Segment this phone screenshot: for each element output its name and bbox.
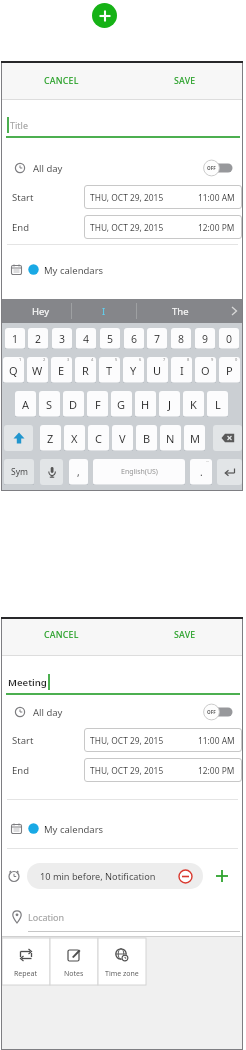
button[interactable]: Sym xyxy=(4,459,34,485)
staticText: 2 xyxy=(43,357,46,362)
staticText: D xyxy=(69,397,78,412)
staticText: English(US) xyxy=(121,467,158,477)
button[interactable]: 7 xyxy=(147,328,167,349)
staticText: I xyxy=(102,305,106,318)
button[interactable]: B xyxy=(136,425,157,451)
button[interactable]: I xyxy=(171,357,192,383)
button[interactable]: F xyxy=(87,391,108,417)
staticText: 11:00 AM xyxy=(198,735,235,746)
button[interactable]: S xyxy=(39,391,60,417)
button[interactable]: C xyxy=(88,425,109,451)
button[interactable]: H xyxy=(135,391,156,417)
button[interactable] xyxy=(50,938,98,985)
staticText: E xyxy=(58,363,65,378)
staticText: 3 xyxy=(67,357,70,362)
button[interactable]: 2 xyxy=(28,328,48,349)
button[interactable]: English(US) xyxy=(93,459,185,485)
button[interactable]: 0 xyxy=(219,328,239,349)
button[interactable] xyxy=(215,869,229,883)
staticText: SAVE xyxy=(174,75,196,87)
button[interactable]: . xyxy=(190,459,212,485)
button[interactable]: O xyxy=(195,357,216,383)
button[interactable]: 6 xyxy=(124,328,144,349)
button[interactable]: 4 xyxy=(76,328,96,349)
staticText: 6 xyxy=(131,332,138,346)
staticText: R xyxy=(82,363,89,378)
button[interactable] xyxy=(2,938,50,985)
button[interactable]: 8 xyxy=(171,328,191,349)
staticText: End xyxy=(12,764,29,777)
staticText: ··· xyxy=(206,459,210,464)
button[interactable]: T xyxy=(99,357,120,383)
button[interactable]: G xyxy=(111,391,132,417)
button[interactable]: CANCEL xyxy=(28,71,94,91)
button[interactable]: Z xyxy=(40,425,61,451)
staticText: 9 xyxy=(211,357,214,362)
staticText: 0 xyxy=(235,357,238,362)
staticText: 6 xyxy=(139,357,142,362)
button[interactable]: 3 xyxy=(52,328,72,349)
staticText: The xyxy=(172,305,189,318)
button[interactable]: V xyxy=(112,425,133,451)
staticText: Hey xyxy=(32,305,50,318)
button[interactable]: THU, OCT 29, 2015 xyxy=(84,215,242,239)
button[interactable]: SAVE xyxy=(157,625,213,645)
staticText: S xyxy=(46,397,53,412)
button[interactable]: A xyxy=(15,391,36,417)
button[interactable]: THU, OCT 29, 2015 xyxy=(84,185,242,209)
staticText: 1 xyxy=(19,357,22,362)
button[interactable]: E xyxy=(51,357,72,383)
staticText: I xyxy=(180,363,184,378)
button[interactable]: CANCEL xyxy=(28,625,94,645)
staticText: 10 min before, Notification xyxy=(40,870,156,883)
button[interactable]: 10 min before, Notification xyxy=(27,863,203,889)
button[interactable]: 1 xyxy=(5,328,25,349)
button[interactable]: L xyxy=(207,391,228,417)
staticText: THU, OCT 29, 2015 xyxy=(90,765,164,776)
staticText: THU, OCT 29, 2015 xyxy=(90,192,164,203)
button[interactable]: P xyxy=(219,357,240,383)
staticText: End xyxy=(12,221,29,234)
button[interactable]: X xyxy=(64,425,85,451)
button[interactable]: 9 xyxy=(195,328,215,349)
button[interactable]: M xyxy=(184,425,205,451)
staticText: All day xyxy=(33,162,63,175)
staticText: 8 xyxy=(187,357,190,362)
button[interactable]: R xyxy=(75,357,96,383)
button[interactable]: U xyxy=(147,357,168,383)
button[interactable] xyxy=(40,459,63,485)
button[interactable] xyxy=(4,425,33,451)
staticText: THU, OCT 29, 2015 xyxy=(90,222,164,233)
staticText: 5 xyxy=(107,332,114,346)
staticText: Z xyxy=(47,431,54,446)
button[interactable]: OFF xyxy=(202,703,233,721)
button[interactable]: OFF xyxy=(202,159,233,177)
button[interactable]: THU, OCT 29, 2015 xyxy=(84,758,242,782)
button[interactable]: Y xyxy=(123,357,144,383)
button[interactable] xyxy=(98,938,146,985)
button[interactable]: SAVE xyxy=(157,71,213,91)
button[interactable]: 5 xyxy=(100,328,120,349)
staticText: J xyxy=(168,397,172,412)
button[interactable] xyxy=(217,459,242,485)
staticText: Sym xyxy=(11,466,28,478)
staticText: W xyxy=(32,363,43,378)
staticText: 3 xyxy=(59,332,66,346)
staticText: CANCEL xyxy=(44,629,79,641)
staticText: F xyxy=(95,397,101,412)
button[interactable]: W xyxy=(27,357,48,383)
staticText: 9 xyxy=(202,332,209,346)
staticText: 12:00 PM xyxy=(198,222,235,233)
button[interactable]: D xyxy=(63,391,84,417)
button[interactable]: THU, OCT 29, 2015 xyxy=(84,728,242,752)
button[interactable]: Q xyxy=(3,357,24,383)
button[interactable] xyxy=(92,3,117,28)
staticText: V xyxy=(119,431,126,446)
button[interactable]: N xyxy=(160,425,181,451)
staticText: B xyxy=(143,431,151,446)
button[interactable] xyxy=(213,425,242,451)
staticText: M xyxy=(190,431,200,446)
button[interactable]: , xyxy=(69,459,88,485)
button[interactable]: J xyxy=(159,391,180,417)
button[interactable]: K xyxy=(183,391,204,417)
